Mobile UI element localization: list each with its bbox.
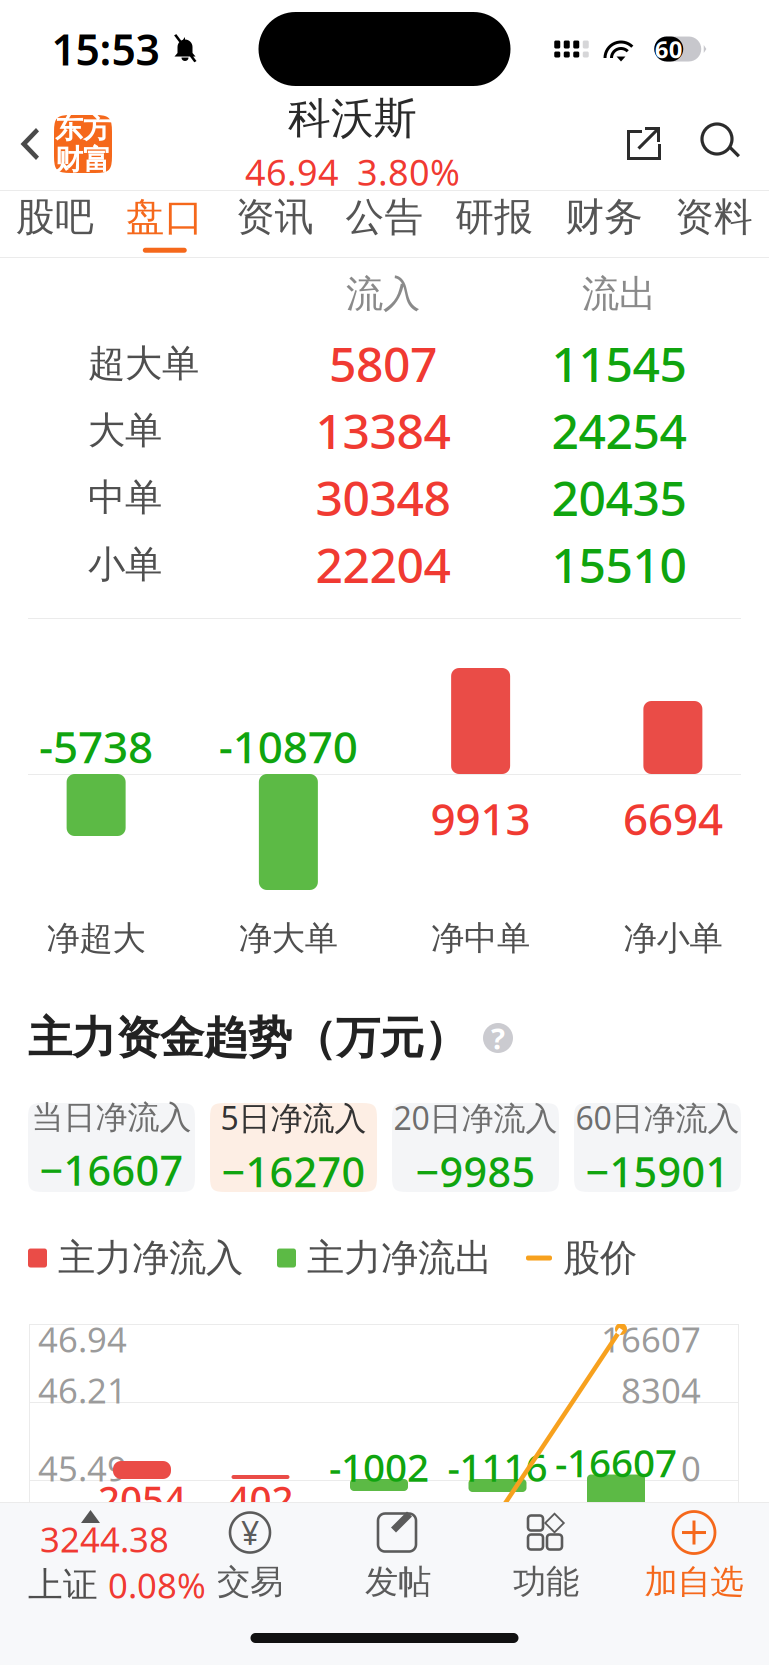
staticText: 2054 bbox=[98, 1473, 186, 1524]
staticText: −9985 bbox=[415, 1144, 535, 1199]
staticText: 小单 bbox=[88, 542, 162, 587]
staticText: −16607 bbox=[39, 1142, 183, 1197]
staticText: 资料 bbox=[675, 193, 753, 241]
button[interactable]: 财务 bbox=[549, 191, 659, 257]
staticText: 46.94 bbox=[38, 1316, 127, 1362]
staticText: 0.08% bbox=[108, 1562, 206, 1608]
staticText: 46.21 bbox=[38, 1367, 127, 1413]
staticText: 11545 bbox=[551, 332, 686, 395]
staticText: 15:53 bbox=[51, 21, 159, 77]
staticText: 13384 bbox=[315, 399, 450, 462]
button[interactable]: ¥ bbox=[176, 1503, 324, 1609]
staticText: 60日净流入 bbox=[575, 1096, 739, 1139]
button[interactable]: 功能 bbox=[472, 1503, 620, 1609]
staticText: 20435 bbox=[551, 466, 686, 529]
button[interactable]: 当日净流入 bbox=[28, 1103, 195, 1192]
staticText: 主力净流入 bbox=[58, 1235, 243, 1281]
staticText: 8304 bbox=[621, 1519, 701, 1565]
staticText: 功能 bbox=[513, 1561, 579, 1602]
staticText: -1116 bbox=[447, 1441, 547, 1492]
staticText: 净超大 bbox=[47, 918, 146, 959]
button[interactable]: 股吧 bbox=[0, 191, 110, 257]
staticText: 中单 bbox=[88, 475, 162, 520]
staticText: 净小单 bbox=[623, 918, 722, 959]
button[interactable]: 发帖 bbox=[324, 1503, 472, 1609]
button[interactable]: 20日净流入 bbox=[392, 1103, 559, 1192]
staticText: -1002 bbox=[329, 1441, 429, 1492]
staticText: 上证 bbox=[28, 1564, 98, 1606]
staticText: 研报 bbox=[455, 193, 533, 241]
staticText: −15901 bbox=[585, 1144, 729, 1199]
staticText: 0 bbox=[681, 1445, 701, 1491]
staticText: 超大单 bbox=[88, 341, 199, 386]
button[interactable]: 盘口 bbox=[110, 191, 220, 257]
staticText: 5日净流入 bbox=[220, 1096, 366, 1139]
staticText: 30348 bbox=[315, 466, 450, 529]
staticText: 东方 bbox=[55, 111, 111, 145]
staticText: 公告 bbox=[345, 193, 423, 241]
staticText: ? bbox=[491, 1018, 505, 1057]
button[interactable]: 资讯 bbox=[220, 191, 330, 257]
staticText: 大单 bbox=[88, 408, 162, 453]
staticText: 20日净流入 bbox=[393, 1096, 557, 1139]
staticText: 60 bbox=[655, 33, 683, 65]
button[interactable]: Search bbox=[701, 123, 743, 165]
staticText: 5807 bbox=[329, 332, 437, 395]
staticText: -16607 bbox=[555, 1436, 677, 1488]
staticText: 16607 bbox=[601, 1316, 701, 1362]
staticText: 流出 bbox=[582, 271, 656, 317]
staticText: −16270 bbox=[221, 1144, 365, 1199]
staticText: 股吧 bbox=[16, 193, 94, 241]
staticText: 45.49 bbox=[38, 1445, 127, 1491]
staticText: 盘口 bbox=[126, 193, 204, 241]
staticText: 流入 bbox=[346, 271, 420, 317]
button[interactable]: 3244.38 bbox=[0, 1503, 206, 1633]
button[interactable]: 5日净流入 bbox=[210, 1103, 377, 1192]
staticText: 主力净流出 bbox=[307, 1235, 492, 1281]
staticText: 22204 bbox=[315, 533, 450, 596]
staticText: 24254 bbox=[551, 399, 686, 462]
staticText: 财务 bbox=[565, 193, 643, 241]
staticText: 净中单 bbox=[431, 918, 530, 959]
staticText: 6694 bbox=[623, 789, 723, 847]
button[interactable]: 60日净流入 bbox=[574, 1103, 741, 1192]
staticText: 3244.38 bbox=[40, 1516, 169, 1562]
staticText: 资讯 bbox=[236, 193, 314, 241]
button[interactable]: 公告 bbox=[330, 191, 439, 257]
staticText: -10870 bbox=[219, 717, 358, 775]
staticText: 9913 bbox=[431, 789, 531, 847]
staticText: 财富 bbox=[55, 142, 111, 177]
staticText: 46.94 bbox=[245, 148, 339, 196]
button[interactable]: 资料 bbox=[659, 191, 769, 257]
staticText: 3.80% bbox=[357, 148, 460, 196]
staticText: 8304 bbox=[621, 1367, 701, 1413]
staticText: 主力资金趋势（万元） bbox=[28, 1011, 468, 1065]
staticText: -5738 bbox=[39, 717, 153, 775]
staticText: ¥ bbox=[241, 1511, 259, 1554]
staticText: 股价 bbox=[563, 1235, 637, 1281]
button[interactable]: 研报 bbox=[439, 191, 549, 257]
staticText: 15510 bbox=[551, 533, 686, 596]
staticText: 加自选 bbox=[644, 1561, 743, 1602]
staticText: 发帖 bbox=[365, 1561, 431, 1602]
staticText: 402 bbox=[227, 1473, 293, 1524]
staticText: 当日净流入 bbox=[31, 1098, 191, 1137]
button[interactable]: Help bbox=[482, 1022, 514, 1054]
staticText: 科沃斯 bbox=[288, 92, 417, 145]
button[interactable]: Back bbox=[0, 98, 124, 190]
staticText: 44.76 bbox=[38, 1519, 127, 1565]
button[interactable]: 加自选 bbox=[620, 1503, 768, 1609]
staticText: 净大单 bbox=[239, 918, 338, 959]
button[interactable]: Share bbox=[625, 124, 665, 164]
staticText: 交易 bbox=[217, 1561, 283, 1602]
